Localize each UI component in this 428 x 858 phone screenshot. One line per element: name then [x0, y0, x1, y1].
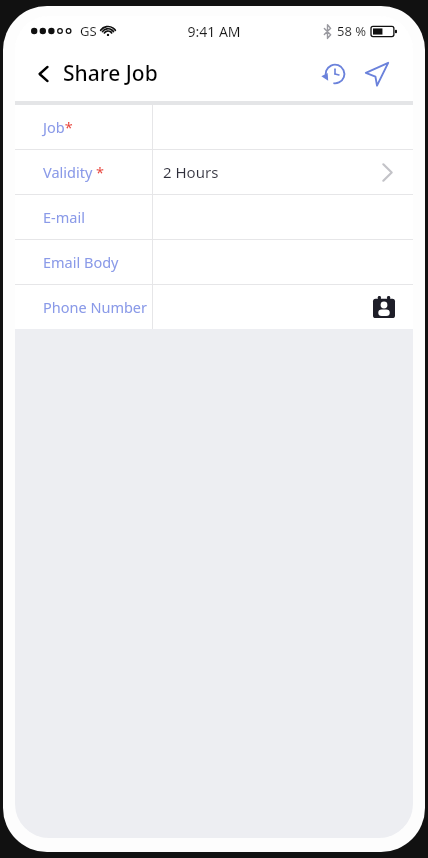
staticText: Share Job: [63, 59, 158, 88]
other: Back: [33, 63, 55, 85]
button[interactable]: Job*: [15, 105, 413, 149]
staticText: 2 Hours: [163, 162, 219, 182]
button[interactable]: Validity *: [15, 150, 413, 194]
staticText: 9:41 AM: [187, 22, 241, 41]
staticText: Email Body: [43, 252, 119, 272]
button[interactable]: History: [315, 54, 355, 94]
button[interactable]: Back: [33, 59, 158, 88]
staticText: E-mail: [43, 207, 85, 227]
staticText: 58 %: [337, 22, 367, 40]
button[interactable]: Phone Number: [15, 285, 413, 329]
button[interactable]: E-mail: [15, 195, 413, 239]
staticText: Phone Number: [43, 297, 148, 317]
staticText: Validity *: [43, 162, 105, 182]
staticText: GS: [80, 22, 97, 40]
button[interactable]: Email Body: [15, 240, 413, 284]
button[interactable]: Choose contact: [367, 290, 401, 324]
button[interactable]: Send: [357, 54, 397, 94]
staticText: Job*: [43, 117, 73, 137]
